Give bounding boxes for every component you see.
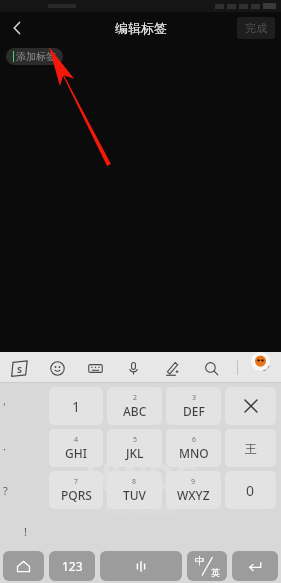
button[interactable]: Home xyxy=(3,551,44,581)
staticText: 4 xyxy=(74,435,79,445)
staticText: ABC xyxy=(123,403,147,419)
staticText: 王 xyxy=(245,441,257,456)
button[interactable]: 3 xyxy=(166,387,221,425)
button[interactable]: Switch Chinese English xyxy=(187,551,227,581)
button[interactable]: 8 xyxy=(107,471,162,509)
button[interactable]: Symbols xyxy=(225,429,276,467)
staticText: MNO xyxy=(179,445,209,461)
button[interactable]: 5 xyxy=(107,429,162,467)
button[interactable]: 6 xyxy=(166,429,221,467)
staticText: 全真全城 品质保证 xyxy=(104,503,179,515)
button[interactable]: Handwriting xyxy=(159,355,185,381)
staticText: 英 xyxy=(211,567,220,578)
button[interactable]: Keyboard layout xyxy=(82,355,108,381)
button[interactable]: Space xyxy=(100,551,182,581)
button[interactable]: Search xyxy=(198,355,224,381)
staticText: GHI xyxy=(65,445,87,461)
staticText: 8 xyxy=(132,477,137,487)
staticText: WXYZ xyxy=(177,487,210,503)
button[interactable]: 2 xyxy=(107,387,162,425)
staticText: ! xyxy=(24,524,27,539)
staticText: · xyxy=(3,441,6,456)
staticText: 3 xyxy=(192,393,197,403)
staticText: 1 xyxy=(72,397,81,416)
button[interactable]: 4 xyxy=(49,429,103,467)
button[interactable]: Emoji xyxy=(44,355,70,381)
staticText: 6 xyxy=(192,435,197,445)
staticText: PQRS xyxy=(61,487,92,503)
button[interactable]: 0 xyxy=(225,471,276,509)
staticText: ? xyxy=(3,483,8,498)
button[interactable]: Sogou input method xyxy=(6,355,32,381)
staticText: DEF xyxy=(183,403,205,419)
staticText: 中 xyxy=(195,554,205,567)
button[interactable]: ' xyxy=(3,385,6,427)
button[interactable]: 完成 xyxy=(237,17,275,39)
staticText: 2 xyxy=(133,393,138,403)
staticText: 7 xyxy=(74,477,79,487)
staticText: 完成 xyxy=(245,21,267,35)
staticText: 添加标签 xyxy=(16,50,56,63)
button[interactable]: Number keypad xyxy=(49,551,95,581)
button[interactable]: 添加标签 xyxy=(6,48,63,65)
staticText: 123 xyxy=(62,558,83,574)
staticText: HWDC xyxy=(85,452,197,501)
staticText: ' xyxy=(3,399,6,414)
button[interactable]: ? xyxy=(3,469,8,511)
staticText: 5 xyxy=(133,435,138,445)
button[interactable]: Enter xyxy=(232,551,278,581)
staticText: 0 xyxy=(246,481,255,500)
button[interactable]: ! xyxy=(3,511,47,551)
button[interactable]: 1 xyxy=(49,387,103,425)
button[interactable]: Back xyxy=(0,12,34,43)
staticText: JKL xyxy=(126,445,144,461)
staticText: TUV xyxy=(123,487,146,503)
staticText: 编辑标签 xyxy=(115,20,167,36)
button[interactable]: · xyxy=(3,427,6,469)
button[interactable]: Delete xyxy=(225,387,276,425)
button[interactable]: Hide keyboard xyxy=(251,355,277,381)
staticText: 9 xyxy=(191,477,196,487)
button[interactable]: Voice input xyxy=(120,355,146,381)
staticText: S xyxy=(17,363,22,375)
button[interactable]: 7 xyxy=(49,471,103,509)
button[interactable]: 9 xyxy=(166,471,221,509)
